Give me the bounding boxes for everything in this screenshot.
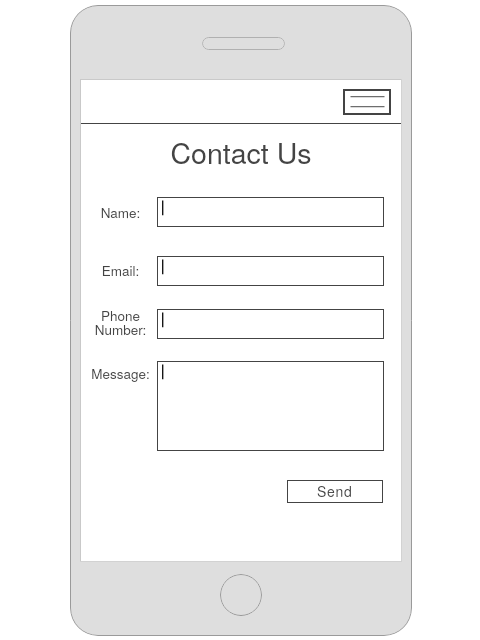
staticText: Message: (46, 364, 195, 383)
staticText: Email: (46, 261, 195, 280)
staticText: Contact Us (81, 131, 401, 172)
button[interactable]: Email (157, 256, 384, 286)
button[interactable]: Menu (343, 89, 391, 115)
button[interactable]: Home (220, 574, 262, 616)
staticText: Name: (46, 203, 195, 222)
button[interactable]: Message (157, 361, 384, 451)
button[interactable]: Phone Number (157, 309, 384, 339)
staticText: Send (317, 481, 353, 501)
staticText: Phone Number: (46, 306, 195, 339)
button[interactable]: Send (287, 480, 383, 503)
button[interactable]: Name (157, 197, 384, 227)
